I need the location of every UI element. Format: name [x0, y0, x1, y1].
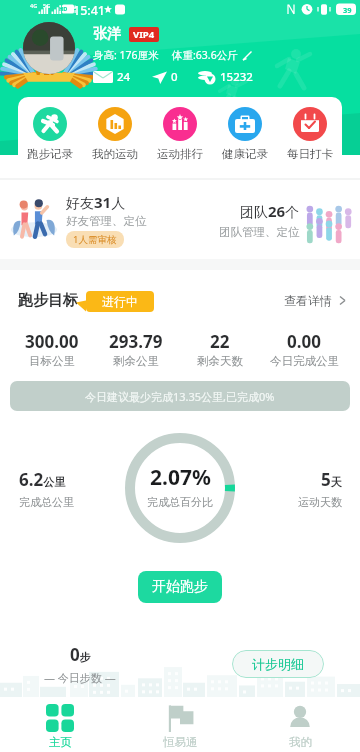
staticText: 300.00 [25, 330, 79, 353]
staticText: 剩余天数 [197, 354, 243, 368]
staticText: 目标公里 [29, 354, 75, 368]
staticText: 0步 [70, 643, 91, 666]
staticText: 剩余公里 [113, 354, 159, 368]
staticText: 15:41 [73, 2, 106, 19]
button[interactable]: 每日打卡 [277, 97, 342, 178]
staticText: 每日打卡 [287, 147, 333, 161]
staticText: 今日建议最少完成13.35公里,已完成0% [85, 389, 275, 404]
staticText: 进行中 [102, 294, 138, 309]
staticText: 15232 [220, 69, 253, 85]
button[interactable]: 好友31人 [0, 180, 180, 259]
button[interactable]: 跑步记录 [18, 97, 82, 178]
button[interactable]: 团队26个 [180, 180, 360, 259]
staticText: — 今日步数 — [44, 670, 116, 685]
staticText: 0 [171, 69, 178, 85]
staticText: VIP4 [133, 28, 155, 41]
staticText: 我的 [289, 735, 312, 749]
staticText: 22 [210, 330, 230, 353]
staticText: 跑步记录 [27, 147, 73, 161]
button[interactable]: 恒易通 [120, 697, 240, 752]
staticText: 体重:63.6公斤 [172, 48, 238, 62]
staticText: 6.2公里 [19, 468, 66, 491]
button[interactable]: 我的 [240, 697, 360, 752]
staticText: VIP [33, 58, 60, 80]
staticText: 0.00 [287, 330, 321, 353]
staticText: 5G [43, 2, 51, 9]
staticText: 张洋 [93, 25, 121, 43]
staticText: 好友31人 [66, 192, 126, 212]
staticText: 恒易通 [163, 735, 198, 749]
staticText: 团队26个 [240, 201, 300, 221]
staticText: 完成总百分比 [147, 495, 213, 509]
staticText: 39 [343, 5, 352, 15]
button[interactable]: 主页 [0, 697, 120, 752]
staticText: 我的运动 [92, 147, 138, 161]
staticText: 完成总公里 [19, 495, 74, 509]
staticText: 4G [30, 2, 38, 9]
button[interactable]: 计步明细 [232, 650, 324, 678]
button[interactable]: 查看详情 [284, 289, 360, 311]
staticText: 今日完成公里 [270, 354, 339, 368]
button[interactable]: 运动排行 [147, 97, 212, 178]
other: Edit [242, 50, 253, 61]
staticText: 主页 [49, 735, 72, 749]
staticText: 跑步目标 [18, 291, 78, 310]
staticText: 查看详情 [284, 293, 332, 308]
staticText: 开始跑步 [152, 578, 208, 596]
staticText: 运动排行 [157, 147, 203, 161]
button[interactable]: 开始跑步 [138, 571, 222, 603]
staticText: 24 [117, 69, 131, 85]
staticText: 好友管理、定位 [66, 214, 147, 228]
staticText: 2.07% [150, 463, 211, 492]
staticText: 健康记录 [222, 147, 268, 161]
staticText: 5天 [321, 468, 342, 491]
staticText: 身高: 176厘米 [93, 48, 159, 62]
staticText: 293.79 [109, 330, 163, 353]
button[interactable]: 我的运动 [82, 97, 147, 178]
staticText: 团队管理、定位 [219, 225, 300, 239]
staticText: HD [59, 5, 68, 12]
staticText: 1人需审核 [73, 233, 117, 246]
staticText: 运动天数 [298, 495, 342, 509]
button[interactable]: 健康记录 [212, 97, 277, 178]
staticText: 计步明细 [252, 656, 304, 672]
